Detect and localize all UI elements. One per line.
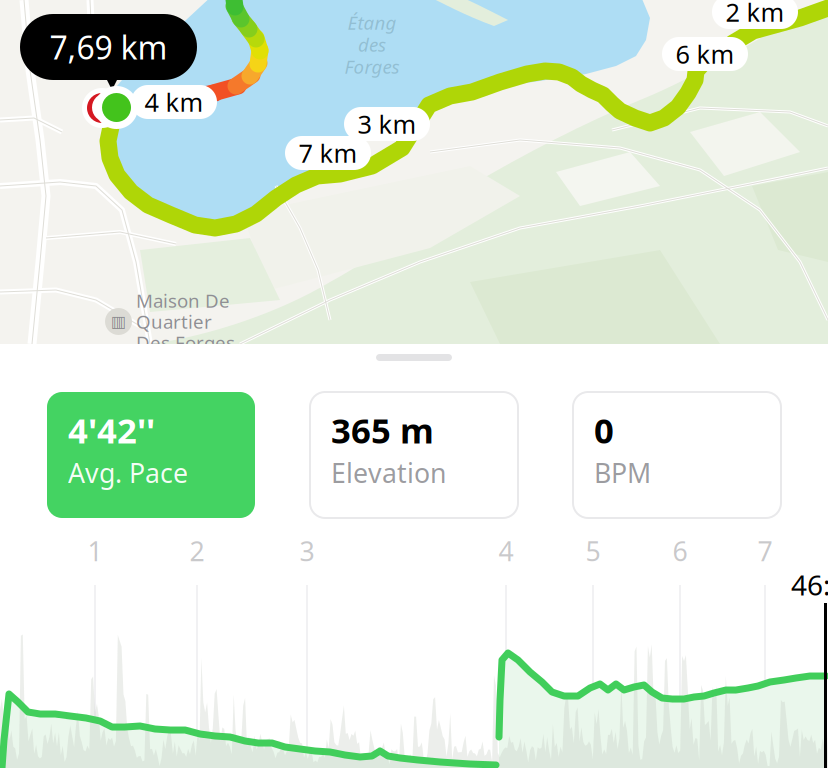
staticText: 1: [87, 533, 102, 569]
staticText: des: [358, 32, 386, 57]
staticText: BPM: [594, 455, 651, 490]
staticText: 46:: [791, 566, 828, 603]
staticText: 5: [585, 533, 600, 569]
staticText: 0: [594, 407, 614, 453]
staticText: 365 m: [331, 407, 434, 453]
staticText: Quartier: [136, 309, 212, 334]
button[interactable]: 4'42'': [47, 392, 255, 518]
staticText: 7,69 km: [49, 26, 167, 68]
staticText: 3: [299, 533, 314, 569]
button[interactable]: 365 m: [310, 392, 518, 518]
staticText: 6 km: [675, 37, 734, 71]
staticText: Forges: [344, 54, 399, 79]
staticText: Maison De: [136, 288, 230, 313]
button[interactable]: 0: [573, 392, 781, 518]
staticText: Des Forges: [136, 330, 235, 355]
staticText: 2: [189, 533, 204, 569]
staticText: 4: [498, 533, 513, 569]
staticText: Étang: [347, 10, 396, 35]
staticText: 4'42'': [68, 407, 155, 453]
staticText: 3 km: [357, 107, 416, 141]
staticText: 6: [672, 533, 687, 569]
staticText: 7 km: [298, 136, 357, 170]
staticText: ▥: [111, 312, 126, 331]
staticText: Avg. Pace: [68, 455, 188, 490]
staticText: 4 km: [144, 85, 203, 119]
staticText: 7: [757, 533, 772, 569]
staticText: Elevation: [331, 455, 446, 490]
staticText: 2 km: [725, 0, 784, 29]
